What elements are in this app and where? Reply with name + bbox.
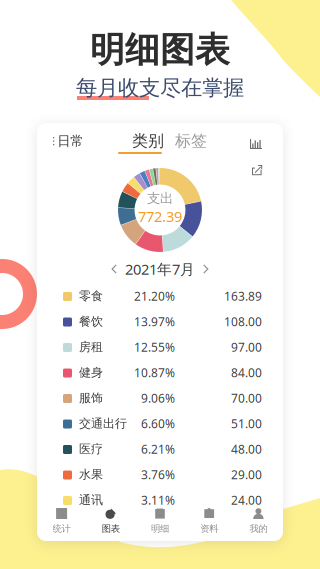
button[interactable]: 类别 <box>126 131 170 151</box>
staticText: 交通出行 <box>79 416 127 431</box>
staticText: 10.87% <box>134 364 175 380</box>
staticText: 2021年7月 <box>125 259 195 279</box>
staticText: 97.00 <box>231 339 262 355</box>
staticText: 每月收支尽在掌握 <box>76 75 244 101</box>
staticText: 6.60% <box>141 415 175 431</box>
staticText: 服饰 <box>79 391 103 405</box>
button[interactable]: Bar chart <box>250 139 262 149</box>
staticText: 29.00 <box>231 466 262 482</box>
staticText: 标签 <box>175 131 207 151</box>
staticText: 13.97% <box>134 313 175 329</box>
button[interactable]: 统计 <box>37 502 86 542</box>
staticText: 明细图表 <box>90 29 230 71</box>
staticText: 支出 <box>147 190 173 206</box>
staticText: 163.89 <box>224 288 262 304</box>
staticText: 水果 <box>79 467 103 482</box>
staticText: 图表 <box>102 523 120 534</box>
button[interactable]: 图表 <box>86 502 135 542</box>
staticText: 餐饮 <box>79 314 103 329</box>
button[interactable]: 我的 <box>234 502 283 542</box>
button[interactable]: Next month <box>196 261 216 277</box>
staticText: 日常 <box>57 133 83 149</box>
staticText: 6.21% <box>141 441 175 457</box>
button[interactable]: Previous month <box>104 261 124 277</box>
button[interactable]: 明细 <box>135 502 185 542</box>
staticText: 772.39 <box>138 206 182 226</box>
staticText: 108.00 <box>224 313 262 329</box>
button[interactable]: Share <box>252 165 262 175</box>
staticText: 零食 <box>79 289 103 303</box>
staticText: 资料 <box>200 523 218 534</box>
staticText: 统计 <box>53 523 71 534</box>
staticText: 类别 <box>132 131 164 151</box>
button[interactable]: 标签 <box>171 131 211 151</box>
staticText: 我的 <box>249 523 267 534</box>
staticText: 24.00 <box>231 492 262 508</box>
staticText: 21.20% <box>134 288 175 304</box>
button[interactable]: 日常 <box>53 131 93 151</box>
button[interactable]: 资料 <box>185 502 234 542</box>
staticText: 51.00 <box>231 415 262 431</box>
staticText: 房租 <box>79 340 103 354</box>
staticText: 3.11% <box>141 492 175 508</box>
staticText: 70.00 <box>231 390 262 406</box>
staticText: 健身 <box>79 365 103 380</box>
staticText: 84.00 <box>231 364 262 380</box>
staticText: 通讯 <box>79 493 103 507</box>
staticText: 医疗 <box>79 442 103 456</box>
staticText: 3.76% <box>141 466 175 482</box>
staticText: 9.06% <box>141 390 175 406</box>
staticText: 明细 <box>151 523 169 534</box>
staticText: 12.55% <box>134 339 175 355</box>
staticText: 48.00 <box>231 441 262 457</box>
